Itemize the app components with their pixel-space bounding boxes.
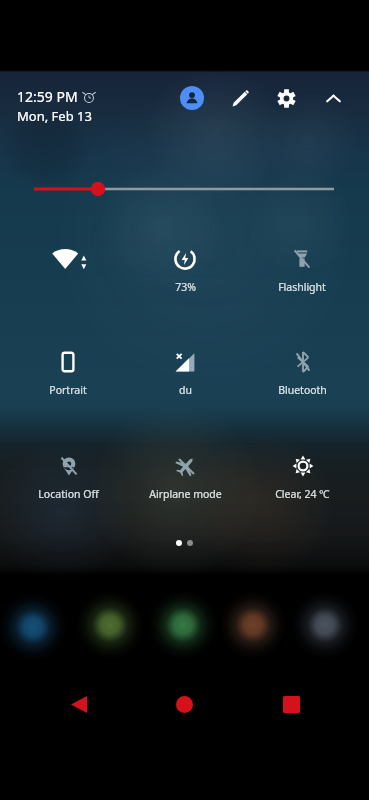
button[interactable]: Recents bbox=[269, 682, 313, 726]
button[interactable]: Portrait bbox=[44, 349, 92, 397]
button[interactable]: Home bbox=[162, 682, 206, 726]
button[interactable]: Collapse bbox=[321, 86, 345, 110]
button[interactable]: Airplane mode bbox=[147, 453, 224, 501]
staticText: Flashlight bbox=[278, 280, 326, 294]
button[interactable]: Brightness bbox=[0, 176, 369, 202]
button[interactable]: User profile bbox=[180, 86, 204, 110]
button[interactable]: Settings bbox=[274, 86, 298, 110]
button[interactable]: Flashlight bbox=[276, 246, 328, 294]
staticText: Bluetooth bbox=[278, 383, 327, 397]
button[interactable]: Mobile data bbox=[161, 349, 209, 397]
button[interactable]: WhatsApp bbox=[149, 592, 217, 658]
button[interactable]: Edit bbox=[228, 86, 252, 110]
button[interactable]: Messages bbox=[76, 592, 144, 658]
staticText: Clear, 24 ℃ bbox=[275, 487, 330, 501]
button[interactable]: Weather bbox=[273, 453, 332, 501]
button[interactable]: Battery bbox=[161, 246, 209, 294]
staticText: Mon, Feb 13 bbox=[17, 107, 92, 125]
staticText: du bbox=[179, 383, 192, 397]
staticText: Location Off bbox=[38, 487, 99, 501]
staticText: Portrait bbox=[49, 383, 87, 397]
button[interactable]: App bbox=[291, 592, 359, 658]
staticText: 12:59 PM bbox=[17, 87, 78, 106]
button[interactable]: Phone bbox=[0, 594, 67, 660]
button[interactable]: Chrome bbox=[219, 592, 287, 658]
staticText: 73% bbox=[175, 280, 196, 294]
button[interactable]: Bluetooth bbox=[276, 349, 329, 397]
staticText: Airplane mode bbox=[149, 487, 222, 501]
button[interactable]: Location bbox=[36, 453, 101, 501]
button[interactable]: Wi-Fi bbox=[44, 246, 92, 272]
button[interactable]: Back bbox=[57, 682, 101, 726]
